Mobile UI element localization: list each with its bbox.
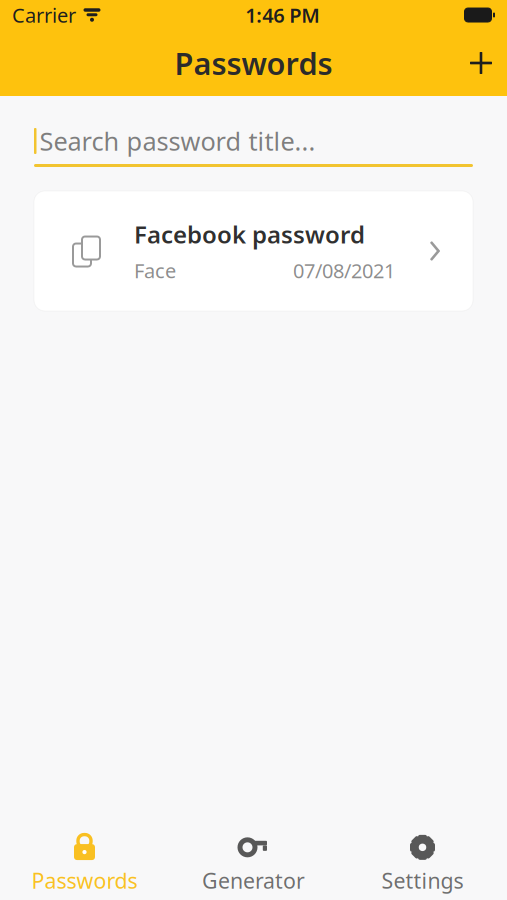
button[interactable]: Passwords: [0, 828, 169, 900]
staticText: Settings: [381, 866, 463, 895]
staticText: Generator: [202, 866, 305, 895]
staticText: Passwords: [31, 866, 137, 895]
staticText: Face: [134, 257, 176, 284]
staticText: 1:46 PM: [245, 2, 320, 28]
button[interactable]: Generator: [169, 828, 338, 900]
button[interactable]: Add password: [455, 37, 507, 89]
button[interactable]: Search password title: [0, 96, 507, 167]
button[interactable]: Settings: [338, 828, 507, 900]
staticText: Search password title...: [39, 124, 315, 158]
staticText: Passwords: [174, 43, 332, 83]
button[interactable]: Facebook password: [34, 191, 473, 311]
staticText: 07/08/2021: [293, 257, 395, 284]
staticText: Carrier: [12, 2, 76, 28]
staticText: Facebook password: [134, 218, 365, 250]
